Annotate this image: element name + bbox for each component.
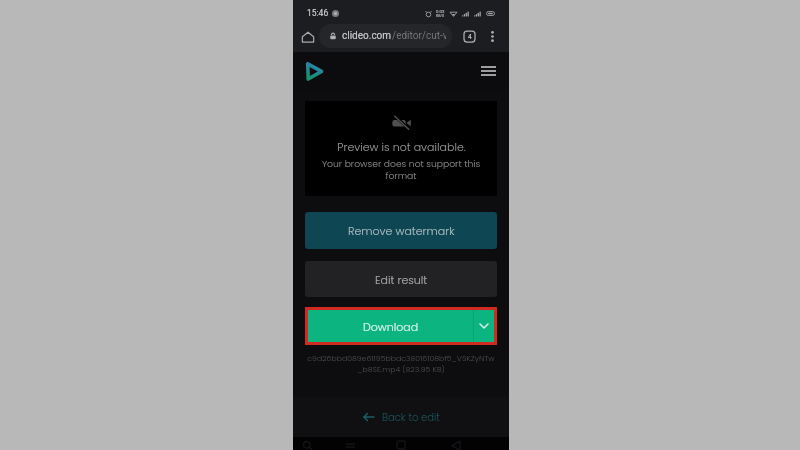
button[interactable]: Edit result — [305, 261, 497, 297]
staticText: KB/S — [436, 14, 445, 18]
button[interactable]: Back — [451, 440, 461, 450]
button[interactable]: Download — [308, 310, 473, 342]
staticText: Download — [363, 319, 419, 334]
button[interactable]: Search — [302, 440, 312, 450]
staticText: clideo.com — [342, 30, 392, 42]
button[interactable]: Recents — [345, 441, 355, 450]
button[interactable]: Tabs — [458, 25, 480, 47]
button[interactable]: Menu — [477, 60, 499, 82]
button[interactable]: More download options — [474, 310, 494, 342]
button[interactable]: Remove watermark — [305, 212, 497, 249]
staticText: Preview is not available. — [337, 139, 466, 154]
staticText: 15:46 — [307, 8, 329, 18]
staticText: c9d26bbd089e61195bbdc38016108bf5_VSKZyNT… — [299, 353, 503, 375]
button[interactable]: Clideo home — [303, 60, 325, 82]
staticText: Remove watermark — [348, 223, 455, 238]
button[interactable]: Back to edit — [293, 397, 509, 437]
staticText: Edit result — [375, 272, 428, 287]
staticText: Back to edit — [382, 410, 440, 424]
button[interactable]: clideo.com — [319, 24, 452, 48]
staticText: 0.03 — [436, 9, 445, 14]
button[interactable]: More options — [483, 27, 501, 45]
button[interactable]: Home — [299, 28, 316, 45]
staticText: /editor/cut-vi — [392, 30, 446, 42]
staticText: Your browser does not support this forma… — [315, 157, 487, 182]
staticText: 4 — [468, 33, 472, 41]
button[interactable]: Home — [396, 440, 406, 450]
